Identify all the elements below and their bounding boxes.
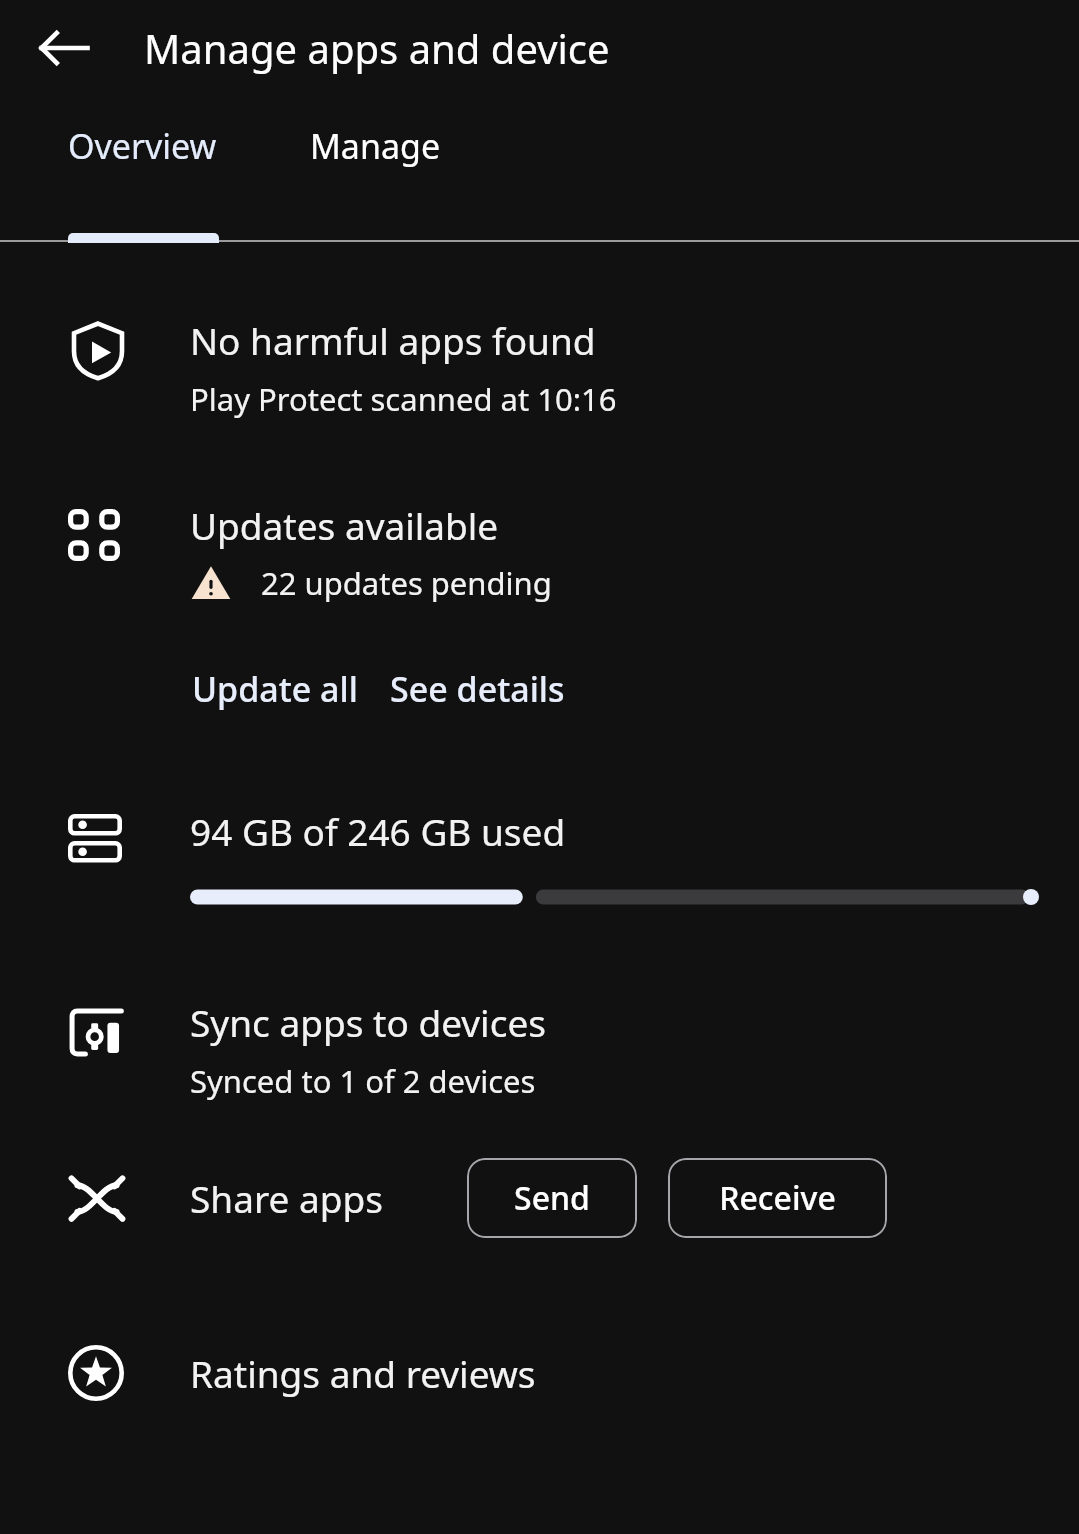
button[interactable]: Receive [668,1158,887,1238]
staticText: No harmful apps found [190,315,596,365]
button[interactable]: Back [28,12,100,84]
staticText: Update all [192,666,358,712]
staticText: Play Protect scanned at 10:16 [190,378,617,420]
staticText: 22 updates pending [261,562,552,604]
staticText: Updates available [190,500,499,550]
button[interactable]: No harmful apps found [0,305,1079,430]
button[interactable]: Update all [190,656,360,722]
staticText: Ratings and reviews [190,1348,536,1398]
staticText: Manage [310,123,441,169]
staticText: Share apps [190,1173,383,1223]
staticText: Sync apps to devices [190,997,546,1047]
staticText: Manage apps and device [144,21,610,75]
button[interactable]: Overview [68,95,220,233]
button[interactable]: 94 GB of 246 GB used [0,806,1079,905]
staticText: Send [514,1176,590,1220]
button[interactable]: Sync apps to devices [0,997,1079,1102]
button[interactable]: Send [467,1158,637,1238]
staticText: Synced to 1 of 2 devices [190,1060,536,1102]
staticText: Receive [719,1176,836,1220]
button[interactable]: See details [388,656,567,722]
button[interactable]: Ratings and reviews [0,1338,1079,1408]
staticText: 94 GB of 246 GB used [190,806,566,856]
staticText: Overview [68,123,217,169]
staticText: See details [390,666,565,712]
button[interactable]: Manage [310,95,450,233]
